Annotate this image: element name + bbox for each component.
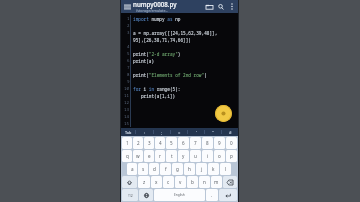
staticText: 8 — [127, 72, 130, 78]
staticText: 11 — [124, 93, 130, 99]
button[interactable]: f — [160, 163, 171, 175]
button[interactable]: z — [138, 176, 150, 188]
staticText: x — [155, 179, 158, 185]
button[interactable]: " — [205, 128, 221, 136]
staticText: 0 — [230, 140, 233, 146]
staticText: 8 — [206, 140, 209, 146]
button[interactable]: i — [202, 150, 213, 162]
staticText: n — [203, 179, 206, 185]
staticText: 9 — [218, 140, 221, 146]
staticText: import numpy as np — [133, 16, 181, 22]
staticText: 9 — [127, 79, 130, 85]
staticText: 14 — [124, 114, 130, 120]
button[interactable]: . — [206, 189, 218, 201]
button[interactable]: 3 — [144, 137, 154, 149]
button[interactable]: 2 — [133, 137, 143, 149]
staticText: 1 — [126, 140, 129, 146]
button[interactable]: l — [220, 163, 231, 175]
staticText: 2 — [127, 23, 130, 29]
button[interactable]: 0 — [226, 137, 237, 149]
button[interactable]: q — [122, 150, 132, 162]
staticText: j — [201, 166, 203, 172]
button[interactable]: p — [226, 150, 237, 162]
button[interactable]: Change language — [139, 189, 153, 201]
button[interactable]: Run script — [215, 105, 232, 122]
button[interactable]: e — [144, 150, 154, 162]
button[interactable]: k — [208, 163, 219, 175]
button[interactable]: h — [184, 163, 195, 175]
button[interactable]: x — [151, 176, 162, 188]
button[interactable]: = — [171, 128, 187, 136]
button[interactable]: g — [172, 163, 183, 175]
button[interactable]: t — [166, 150, 177, 162]
button[interactable]: More options — [226, 0, 237, 13]
staticText: 7 — [194, 140, 197, 146]
staticText: z — [143, 179, 146, 185]
button[interactable]: !12 — [122, 189, 138, 201]
button[interactable]: Backspace — [223, 176, 237, 188]
button[interactable]: 8 — [202, 137, 213, 149]
staticText: 4 — [127, 44, 130, 50]
staticText: 13 — [124, 107, 130, 113]
button[interactable]: a — [127, 163, 137, 175]
staticText: t — [171, 153, 173, 159]
button[interactable]: w — [133, 150, 143, 162]
button[interactable]: v — [175, 176, 186, 188]
staticText: 5 — [170, 140, 173, 146]
staticText: print(a) — [133, 58, 155, 64]
staticText: s — [142, 166, 145, 172]
staticText: i — [207, 153, 209, 159]
button[interactable]: 5 — [166, 137, 177, 149]
staticText: u — [194, 153, 197, 159]
button[interactable]: m — [211, 176, 222, 188]
staticText: c — [167, 179, 170, 185]
button[interactable]: Shift — [122, 176, 137, 188]
staticText: 12 — [124, 100, 130, 106]
staticText: p — [230, 153, 233, 159]
button[interactable]: 6 — [178, 137, 189, 149]
staticText: print("2-d array") — [133, 51, 181, 57]
button[interactable]: j — [196, 163, 207, 175]
button[interactable]: n — [199, 176, 210, 188]
staticText: 2 — [137, 140, 140, 146]
button[interactable]: 1 — [121, 13, 238, 128]
staticText: !12 — [128, 193, 133, 198]
staticText: Tab — [125, 130, 132, 135]
button[interactable]: English — [154, 189, 205, 201]
button[interactable]: # — [222, 128, 238, 136]
button[interactable]: 1 — [122, 137, 132, 149]
button[interactable]: u — [190, 150, 201, 162]
button[interactable]: 7 — [190, 137, 201, 149]
button[interactable]: 9 — [214, 137, 225, 149]
staticText: ' — [196, 130, 197, 135]
staticText: 10 — [124, 86, 130, 92]
button[interactable]: s — [138, 163, 148, 175]
button[interactable]: : — [136, 128, 153, 136]
button[interactable]: b — [187, 176, 198, 188]
button[interactable]: o — [214, 150, 225, 162]
staticText: for i in range(5): — [133, 86, 181, 92]
button[interactable]: Tab — [121, 128, 135, 136]
button[interactable]: d — [149, 163, 159, 175]
staticText: /storage/emulate... — [136, 8, 169, 13]
button[interactable]: r — [155, 150, 165, 162]
button[interactable]: Open folder — [204, 0, 215, 13]
button[interactable]: Open navigation menu — [121, 0, 133, 13]
button[interactable]: ' — [188, 128, 204, 136]
staticText: g — [176, 166, 179, 172]
staticText: q — [126, 153, 129, 159]
button[interactable]: numpy0008.py — [133, 0, 204, 13]
staticText: 3 — [148, 140, 151, 146]
staticText: 6 — [182, 140, 185, 146]
button[interactable]: y — [178, 150, 189, 162]
staticText: numpy0008.py — [133, 0, 177, 8]
button[interactable]: 4 — [155, 137, 165, 149]
button[interactable]: Enter — [219, 189, 237, 201]
button[interactable]: c — [163, 176, 174, 188]
staticText: f — [165, 166, 167, 172]
staticText: 6 — [127, 58, 130, 64]
button[interactable]: ; — [154, 128, 170, 136]
button[interactable]: Search — [215, 0, 226, 13]
staticText: " — [212, 130, 214, 135]
staticText: o — [218, 153, 221, 159]
